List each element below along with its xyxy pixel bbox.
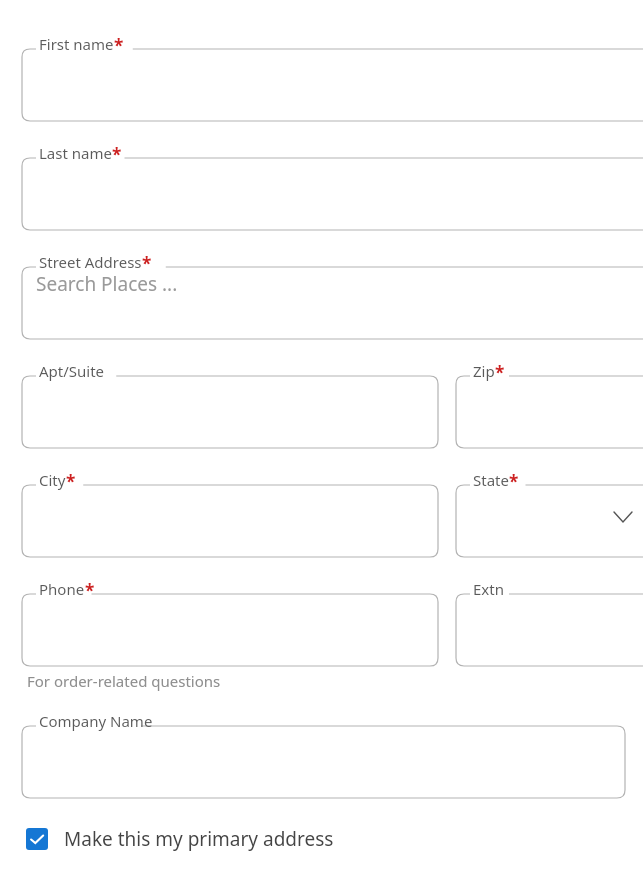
- staticText: *: [85, 579, 95, 602]
- staticText: State: [473, 470, 509, 490]
- button[interactable]: Company Name: [22, 700, 625, 798]
- button[interactable]: First name: [22, 23, 643, 121]
- staticText: For order-related questions: [27, 671, 221, 691]
- staticText: Company Name: [39, 711, 153, 731]
- staticText: Extn: [473, 579, 504, 599]
- staticText: Street Address: [39, 252, 142, 272]
- staticText: First name: [39, 34, 114, 54]
- staticText: *: [495, 361, 505, 384]
- staticText: Apt/Suite: [39, 361, 105, 381]
- staticText: Last name: [39, 143, 112, 163]
- button[interactable]: Extn: [456, 568, 643, 666]
- staticText: Phone: [39, 579, 85, 599]
- button[interactable]: Apt/Suite: [22, 350, 438, 448]
- button[interactable]: Make this my primary address: [26, 826, 334, 852]
- staticText: *: [509, 470, 519, 493]
- staticText: *: [114, 34, 124, 57]
- button[interactable]: State: [456, 459, 643, 557]
- staticText: *: [142, 252, 152, 275]
- button[interactable]: Open state dropdown: [609, 503, 637, 531]
- button[interactable]: Last name: [22, 132, 643, 230]
- staticText: *: [112, 143, 122, 166]
- staticText: Zip: [473, 361, 495, 381]
- button[interactable]: Zip: [456, 350, 643, 448]
- button[interactable]: Street Address: [22, 241, 643, 339]
- staticText: Search Places ...: [36, 271, 178, 297]
- staticText: City: [39, 470, 66, 490]
- button[interactable]: City: [22, 459, 438, 557]
- staticText: Make this my primary address: [64, 826, 334, 852]
- staticText: *: [66, 470, 76, 493]
- button[interactable]: Phone: [22, 568, 438, 666]
